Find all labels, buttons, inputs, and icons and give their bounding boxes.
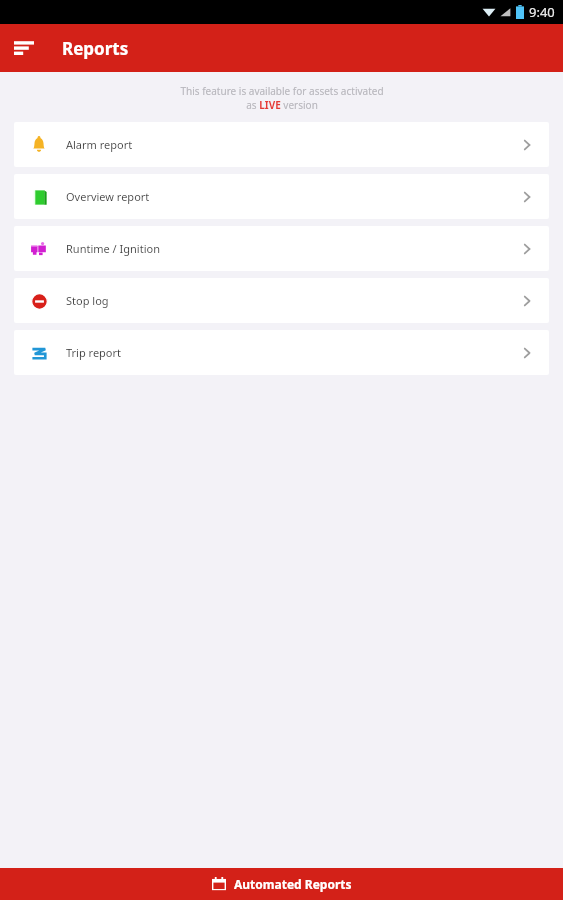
staticText: Stop log	[66, 293, 109, 308]
button[interactable]: Alarm report	[14, 122, 549, 167]
staticText: Overview report	[66, 189, 150, 204]
staticText: 9:40	[529, 3, 555, 21]
button[interactable]: Automated Reports	[0, 868, 563, 900]
staticText: Alarm report	[66, 137, 133, 152]
staticText: Trip report	[66, 345, 122, 360]
button[interactable]: Stop log	[14, 278, 549, 323]
staticText: Runtime / Ignition	[66, 241, 160, 256]
button[interactable]: Overview report	[14, 174, 549, 219]
staticText: Automated Reports	[234, 876, 352, 892]
button[interactable]: Trip report	[14, 330, 549, 375]
button[interactable]: Open navigation menu	[0, 24, 48, 72]
staticText: Reports	[62, 37, 129, 60]
button[interactable]: Runtime / Ignition	[14, 226, 549, 271]
staticText: This feature is available for assets act…	[180, 84, 384, 112]
